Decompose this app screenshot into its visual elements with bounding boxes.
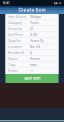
staticText: Location (8, 45, 22, 49)
button[interactable]: Category (5, 20, 58, 26)
staticText: Save Item (24, 76, 40, 81)
button[interactable]: Status (5, 56, 58, 62)
staticText: Supplier (8, 39, 21, 43)
staticText: Tags (8, 63, 16, 67)
staticText: Category (8, 21, 22, 25)
staticText: Item Name (8, 15, 26, 19)
button[interactable]: Unit Price (5, 32, 58, 38)
button[interactable]: Location (5, 44, 58, 50)
staticText: Quantity (8, 27, 22, 31)
staticText: Reorder At (8, 51, 24, 55)
staticText: new (30, 63, 37, 67)
staticText: 4.50 (30, 33, 37, 37)
button[interactable]: Tags (5, 62, 58, 68)
staticText: Notes (8, 69, 18, 73)
button[interactable]: Item Name (5, 14, 58, 20)
staticText: ▮▮ ▰ (54, 1, 61, 5)
staticText: Acme Co (30, 39, 44, 43)
button[interactable]: Supplier (5, 38, 58, 44)
staticText: 9:41 (3, 1, 9, 5)
staticText: 12 (30, 27, 33, 31)
button[interactable]: Reorder At (5, 50, 58, 56)
button[interactable]: Notes (5, 68, 58, 74)
staticText: — (30, 69, 33, 73)
staticText: Status (8, 57, 18, 61)
staticText: Active (30, 57, 40, 61)
button[interactable]: Save Item (5, 74, 58, 83)
staticText: Bin A3 (30, 45, 40, 49)
staticText: Create Item (18, 7, 45, 13)
staticText: Widget (30, 15, 41, 19)
button[interactable]: Quantity (5, 26, 58, 32)
staticText: Unit Price (8, 33, 23, 37)
staticText: Tools (30, 21, 39, 25)
staticText: 5 (30, 51, 32, 55)
